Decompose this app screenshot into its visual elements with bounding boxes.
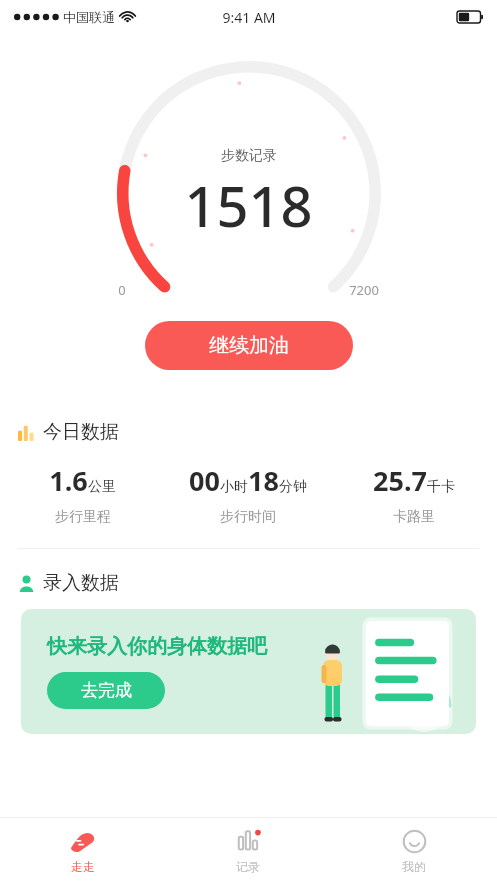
staticText: 9:41 AM bbox=[222, 8, 276, 27]
button[interactable]: 快来录入你的身体数据吧 bbox=[21, 609, 476, 734]
staticText: 0 bbox=[118, 281, 126, 299]
staticText: 走走 bbox=[71, 859, 95, 874]
button[interactable]: 继续加油 bbox=[145, 321, 353, 370]
staticText: 中国联通 bbox=[63, 9, 115, 25]
staticText: 快来录入你的身体数据吧 bbox=[47, 634, 267, 659]
button[interactable]: 去完成 bbox=[47, 672, 165, 709]
button[interactable]: 我的 bbox=[331, 818, 497, 883]
staticText: 记录 bbox=[236, 859, 260, 874]
staticText: 7200 bbox=[349, 281, 379, 299]
staticText: 去完成 bbox=[81, 680, 132, 701]
staticText: 继续加油 bbox=[209, 333, 289, 358]
staticText: 1518 bbox=[184, 167, 313, 243]
button[interactable]: 记录 bbox=[165, 818, 331, 883]
staticText: 00 bbox=[189, 462, 220, 499]
staticText: 步行时间 bbox=[220, 508, 276, 526]
staticText: 1.6 bbox=[49, 462, 88, 499]
staticText: 我的 bbox=[402, 859, 426, 874]
staticText: 18 bbox=[248, 462, 279, 499]
staticText: 卡路里 bbox=[393, 508, 435, 526]
staticText: 步行里程 bbox=[55, 508, 111, 526]
staticText: 今日数据 bbox=[43, 420, 119, 444]
staticText: 千卡 bbox=[427, 478, 455, 496]
staticText: 分钟 bbox=[279, 478, 307, 496]
staticText: 录入数据 bbox=[43, 571, 119, 595]
staticText: 步数记录 bbox=[221, 147, 277, 165]
button[interactable]: 走走 bbox=[0, 818, 165, 883]
staticText: 小时 bbox=[220, 478, 248, 496]
staticText: 公里 bbox=[88, 478, 116, 496]
staticText: 25.7 bbox=[373, 462, 427, 499]
